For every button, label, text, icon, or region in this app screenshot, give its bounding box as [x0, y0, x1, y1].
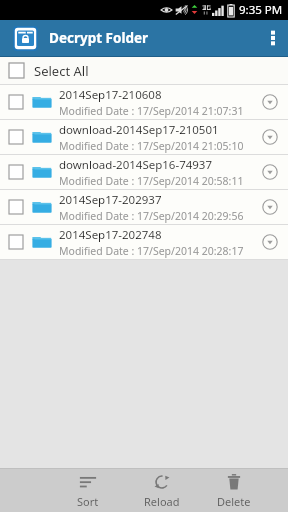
button[interactable]: Expand options: [255, 87, 285, 117]
button[interactable]: 2014Sep17-202748: [0, 225, 288, 259]
staticText: Decrypt Folder: [49, 29, 149, 47]
staticText: Delete: [217, 494, 251, 509]
staticText: 9:35 PM: [239, 2, 283, 18]
button[interactable]: Reload: [136, 469, 188, 512]
button[interactable]: 2014Sep17-210608: [0, 85, 288, 119]
button[interactable]: Expand options: [255, 122, 285, 152]
staticText: download-2014Sep17-210501: [59, 122, 219, 138]
staticText: Modified Date : 17/Sep/2014 21:07:31: [59, 104, 244, 118]
staticText: 2014Sep17-210608: [59, 87, 162, 103]
staticText: Modified Date : 17/Sep/2014 21:05:10: [59, 139, 244, 153]
button[interactable]: Expand options: [255, 157, 285, 187]
staticText: Reload: [144, 494, 180, 509]
staticText: Sort: [77, 494, 99, 509]
staticText: Modified Date : 17/Sep/2014 20:28:17: [59, 244, 244, 258]
button[interactable]: Select All: [0, 57, 288, 84]
button[interactable]: Expand options: [255, 227, 285, 257]
staticText: download-2014Sep16-74937: [59, 157, 213, 173]
staticText: Select All: [34, 62, 89, 80]
button[interactable]: More options: [258, 20, 288, 56]
button[interactable]: Expand options: [255, 192, 285, 222]
staticText: 2014Sep17-202937: [59, 192, 162, 208]
staticText: 2014Sep17-202748: [59, 227, 162, 243]
button[interactable]: 2014Sep17-202937: [0, 190, 288, 224]
button[interactable]: Delete: [208, 469, 260, 512]
staticText: Modified Date : 17/Sep/2014 20:58:11: [59, 174, 244, 188]
button[interactable]: App icon: [12, 25, 38, 51]
staticText: Modified Date : 17/Sep/2014 20:29:56: [59, 209, 244, 223]
button[interactable]: Sort: [62, 469, 114, 512]
button[interactable]: download-2014Sep17-210501: [0, 120, 288, 154]
button[interactable]: download-2014Sep16-74937: [0, 155, 288, 189]
